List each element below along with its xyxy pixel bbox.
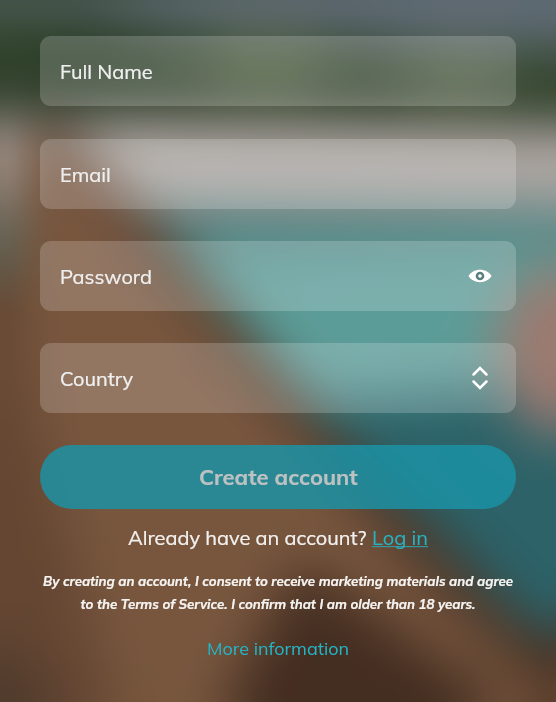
button[interactable]: Password: [40, 241, 516, 311]
button[interactable]: More information: [40, 637, 516, 660]
staticText: Already have an account?: [128, 525, 372, 550]
staticText: Password: [60, 264, 152, 289]
button[interactable]: Email: [40, 139, 516, 209]
staticText: Create account: [199, 463, 358, 491]
staticText: Full Name: [60, 59, 153, 84]
staticText: Log in: [372, 525, 428, 550]
button[interactable]: Create account: [40, 445, 516, 509]
button[interactable]: Full Name: [40, 36, 516, 106]
staticText: By creating an account, I consent to rec…: [40, 573, 516, 612]
button[interactable]: Select country: [465, 363, 495, 393]
button[interactable]: Show password: [465, 261, 495, 291]
staticText: Email: [60, 162, 111, 187]
button[interactable]: Log in: [372, 525, 428, 550]
button[interactable]: Country: [40, 343, 516, 413]
staticText: More information: [207, 637, 350, 660]
staticText: Country: [60, 366, 134, 391]
